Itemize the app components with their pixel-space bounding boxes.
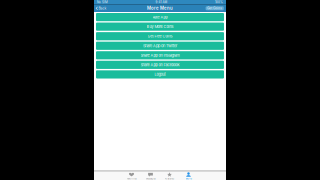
staticText: Back (98, 6, 106, 10)
button[interactable]: Get Free Coins (96, 32, 224, 40)
staticText: More Menu (147, 6, 173, 11)
staticText: More (185, 177, 191, 180)
staticText: Share App on Facebook (140, 62, 179, 67)
staticText: 9:41 AM (155, 0, 167, 4)
staticText: Messages (145, 177, 155, 180)
button[interactable]: Share App on Facebook (96, 61, 224, 69)
staticText: Logout (154, 72, 165, 77)
staticText: Buy More Coins (146, 24, 173, 29)
staticText: Featured (164, 177, 174, 180)
staticText: Get Coins (207, 6, 222, 10)
button[interactable]: Messages (141, 171, 160, 180)
staticText: Rate App (152, 15, 167, 19)
staticText: Favorites (126, 177, 136, 180)
button[interactable]: Favorites (122, 171, 141, 180)
staticText: Get Free Coins (147, 34, 172, 39)
staticText: Share App on Instagram (140, 53, 179, 58)
button[interactable]: Share App on Twitter (96, 42, 224, 50)
button[interactable]: Get Coins (206, 6, 224, 10)
staticText: No SIM (97, 0, 108, 4)
button[interactable]: Logout (96, 70, 224, 78)
staticText: Share App on Twitter (143, 43, 177, 48)
staticText: 100% (215, 0, 223, 4)
button[interactable]: Share App on Instagram (96, 51, 224, 59)
button[interactable]: Featured (160, 171, 179, 180)
button[interactable]: Buy More Coins (96, 22, 224, 31)
button[interactable]: More (179, 171, 198, 180)
button[interactable]: Back (94, 5, 108, 12)
button[interactable]: Rate App (96, 13, 224, 21)
